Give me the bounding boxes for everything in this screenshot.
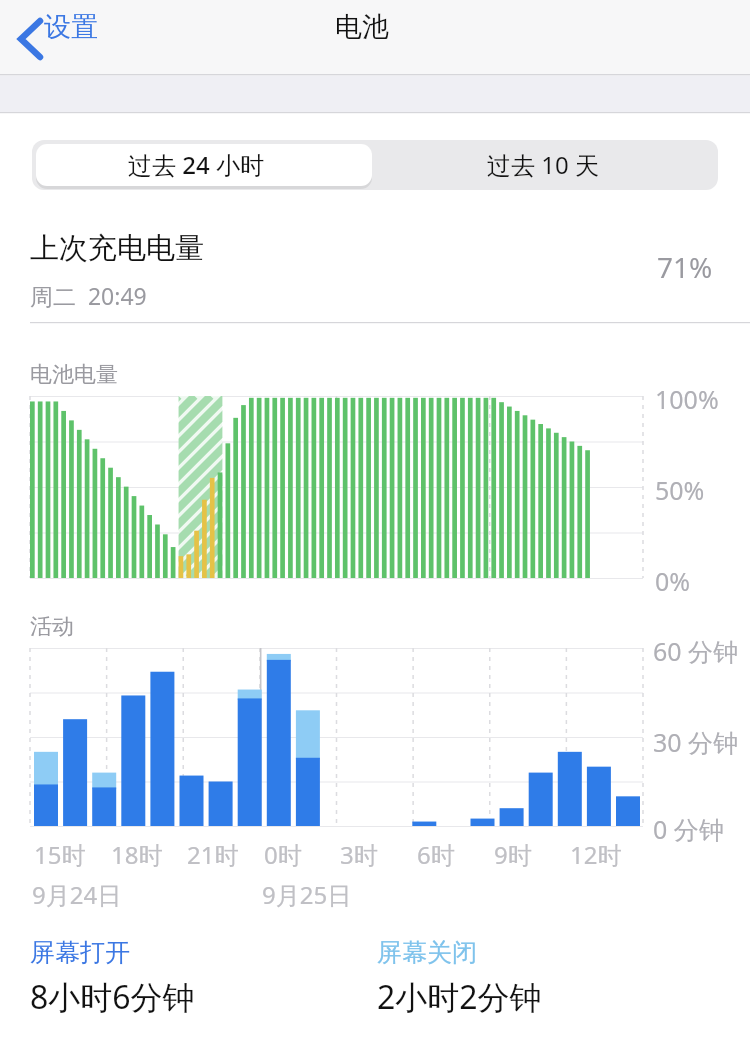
button[interactable] [0, 214, 750, 322]
staticText: 周二 20:49 [30, 280, 147, 311]
staticText: 30 分钟 [653, 725, 739, 759]
staticText: 6时 [417, 838, 455, 871]
staticText: 18时 [111, 838, 163, 871]
button[interactable] [375, 140, 718, 190]
staticText: 0% [655, 564, 691, 598]
staticText: 活动 [30, 613, 74, 641]
staticText: 电池电量 [30, 361, 118, 389]
staticText: 15时 [34, 838, 86, 871]
staticText: 9时 [494, 838, 532, 871]
button[interactable]: 返回设置 [6, 6, 146, 68]
staticText: 21时 [187, 838, 239, 871]
staticText: 12时 [570, 838, 622, 871]
staticText: 3时 [340, 838, 378, 871]
staticText: 100% [655, 382, 719, 416]
staticText: 过去 24 小时 [128, 148, 264, 181]
staticText: 设置 [44, 10, 98, 44]
staticText: 8小时6分钟 [30, 975, 195, 1019]
staticText: 屏幕打开 [30, 937, 130, 968]
staticText: 9月24日 [32, 878, 122, 911]
staticText: 50% [655, 473, 705, 507]
staticText: 屏幕关闭 [377, 937, 477, 968]
staticText: 电池 [335, 10, 389, 44]
staticText: 2小时2分钟 [377, 975, 542, 1019]
staticText: 0时 [264, 838, 302, 871]
staticText: 0 分钟 [653, 812, 724, 846]
staticText: 71% [657, 248, 713, 286]
staticText: 过去 10 天 [487, 148, 599, 181]
button[interactable] [32, 140, 375, 190]
staticText: 上次充电电量 [30, 230, 204, 267]
staticText: 60 分钟 [653, 634, 739, 668]
staticText: 9月25日 [262, 878, 352, 911]
